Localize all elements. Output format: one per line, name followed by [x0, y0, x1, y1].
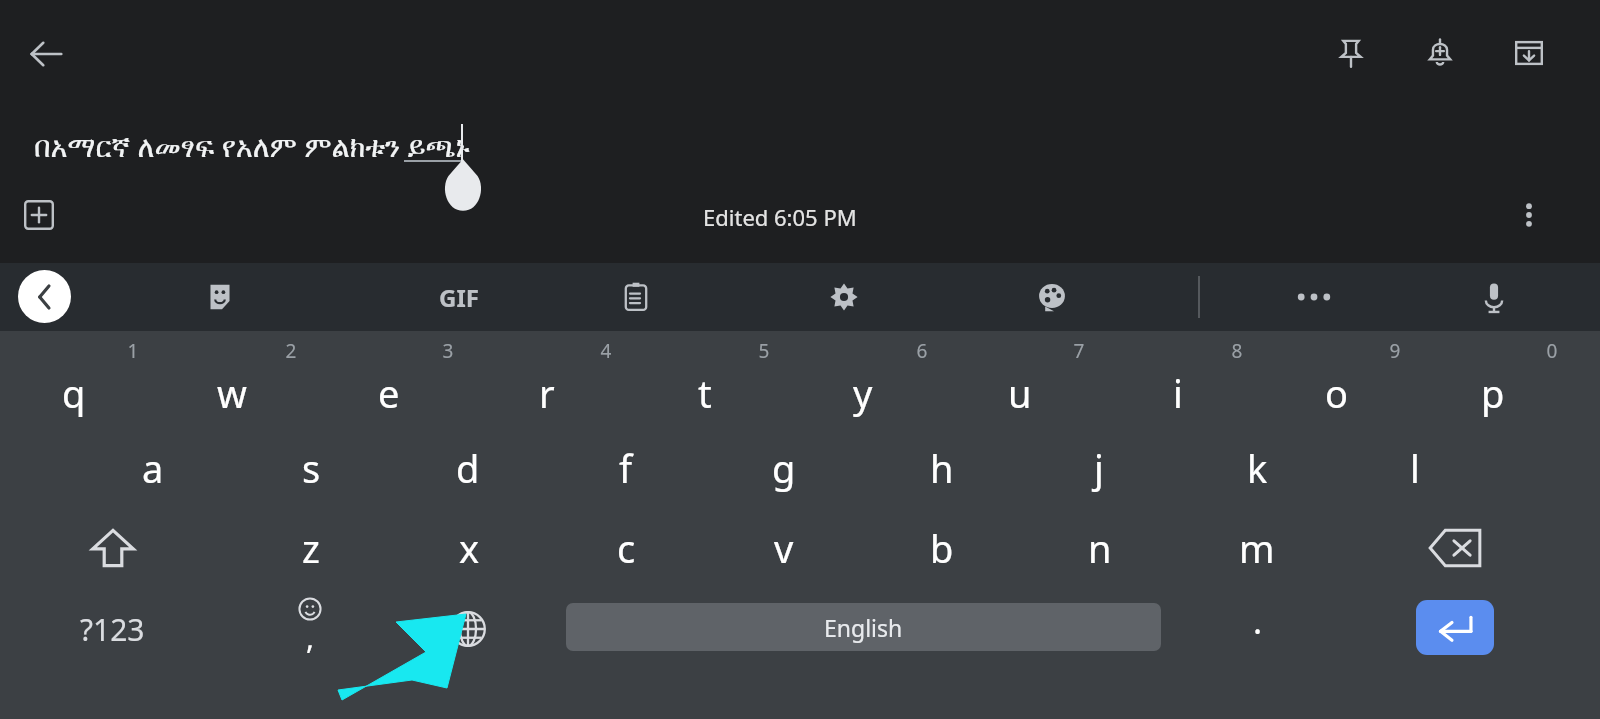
button[interactable]: Stickers	[190, 272, 250, 322]
staticText: i	[1173, 367, 1183, 419]
button[interactable]: e	[310, 331, 468, 428]
staticText: y	[853, 367, 873, 419]
button[interactable]: Clipboard	[606, 272, 666, 322]
staticText: t	[698, 367, 712, 419]
staticText: o	[1325, 367, 1348, 419]
staticText: h	[930, 442, 954, 494]
staticText: z	[302, 522, 320, 574]
button[interactable]: n	[1021, 508, 1179, 588]
button[interactable]: s	[232, 428, 390, 508]
button[interactable]: v	[705, 508, 863, 588]
staticText: d	[456, 442, 480, 494]
button[interactable]: u	[941, 331, 1099, 428]
staticText: n	[1088, 522, 1112, 574]
staticText: x	[459, 522, 480, 574]
staticText: f	[619, 442, 633, 494]
staticText: ?123	[80, 609, 145, 650]
button[interactable]: r	[468, 331, 626, 428]
staticText: u	[1008, 367, 1032, 419]
button[interactable]: b	[863, 508, 1021, 588]
button[interactable]: o	[1257, 331, 1415, 428]
staticText: 2	[276, 338, 306, 364]
button[interactable]: Back	[16, 24, 76, 84]
button[interactable]: ?123	[35, 588, 190, 670]
staticText: k	[1247, 442, 1268, 494]
button[interactable]: Pin	[1321, 23, 1381, 83]
button[interactable]: m	[1178, 508, 1336, 588]
button[interactable]: a	[74, 428, 232, 508]
staticText: w	[217, 367, 247, 419]
button[interactable]: Themes	[1022, 272, 1082, 322]
button[interactable]: More	[1284, 277, 1344, 317]
button[interactable]: Close toolbar	[18, 270, 71, 323]
button[interactable]: y	[784, 331, 942, 428]
button[interactable]: Archive	[1499, 23, 1559, 83]
staticText: 4	[591, 338, 621, 364]
staticText: 3	[433, 338, 463, 364]
button[interactable]: t	[626, 331, 784, 428]
button[interactable]: English	[566, 603, 1161, 651]
staticText: 0	[1537, 338, 1567, 364]
staticText: በአማርኛ ለመፃፍ የአለም ምልክቱን ይጫኑ	[34, 126, 470, 165]
staticText: GIF	[439, 281, 479, 314]
button[interactable]: .	[1210, 588, 1306, 670]
button[interactable]: g	[705, 428, 863, 508]
button[interactable]: i	[1099, 331, 1257, 428]
staticText: 8	[1222, 338, 1252, 364]
staticText: m	[1239, 522, 1275, 574]
button[interactable]: h	[863, 428, 1021, 508]
button[interactable]: Voice input	[1464, 272, 1524, 322]
button[interactable]: Backspace	[1375, 508, 1535, 588]
staticText: c	[617, 522, 636, 574]
button[interactable]: w	[153, 331, 311, 428]
staticText: g	[772, 442, 796, 494]
staticText: e	[378, 367, 400, 419]
button[interactable]: f	[547, 428, 705, 508]
button[interactable]: Emoji	[262, 588, 358, 670]
button[interactable]: Change language	[420, 588, 516, 670]
staticText: English	[824, 612, 903, 643]
staticText: .	[1253, 598, 1263, 644]
staticText: 7	[1064, 338, 1094, 364]
staticText: l	[1410, 442, 1420, 494]
button[interactable]: p	[1414, 331, 1572, 428]
button[interactable]: x	[390, 508, 548, 588]
staticText: j	[1094, 442, 1104, 494]
button[interactable]: Settings	[814, 272, 874, 322]
button[interactable]: More options	[1500, 186, 1558, 244]
button[interactable]: GIF	[424, 277, 494, 317]
button[interactable]: c	[547, 508, 705, 588]
staticText: 1	[118, 338, 148, 364]
staticText: s	[302, 442, 321, 494]
staticText: b	[930, 522, 954, 574]
staticText: a	[142, 442, 164, 494]
button[interactable]: l	[1336, 428, 1494, 508]
button[interactable]: j	[1020, 428, 1178, 508]
staticText: p	[1481, 367, 1505, 419]
button[interactable]: z	[232, 508, 390, 588]
button[interactable]: Shift	[35, 508, 190, 588]
button[interactable]: q	[0, 331, 153, 428]
button[interactable]: Enter	[1416, 600, 1494, 655]
staticText: v	[774, 522, 794, 574]
staticText: q	[62, 367, 86, 419]
button[interactable]: Add reminder	[1410, 23, 1470, 83]
button[interactable]: k	[1178, 428, 1336, 508]
staticText: 6	[907, 338, 937, 364]
button[interactable]: Add	[10, 186, 68, 244]
staticText: Edited 6:05 PM	[703, 202, 857, 232]
staticText: ,	[306, 617, 315, 658]
staticText: 9	[1380, 338, 1410, 364]
staticText: 5	[749, 338, 779, 364]
staticText: r	[539, 367, 555, 419]
button[interactable]: d	[389, 428, 547, 508]
